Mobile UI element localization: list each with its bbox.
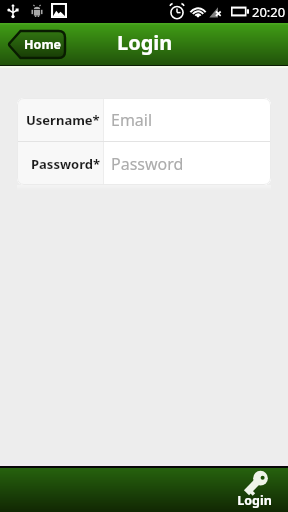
staticText: Username* <box>26 111 100 129</box>
staticText: 20:20 <box>252 3 286 21</box>
staticText: Password* <box>31 155 100 173</box>
button[interactable]: Password* <box>17 142 271 185</box>
staticText: Password <box>111 153 184 175</box>
button[interactable]: Username* <box>17 98 271 141</box>
button[interactable]: Home <box>7 30 66 59</box>
staticText: Email <box>111 109 153 131</box>
staticText: Login <box>237 492 272 509</box>
button[interactable]: Login <box>229 468 279 512</box>
staticText: Home <box>24 36 62 53</box>
staticText: Login <box>117 29 173 56</box>
